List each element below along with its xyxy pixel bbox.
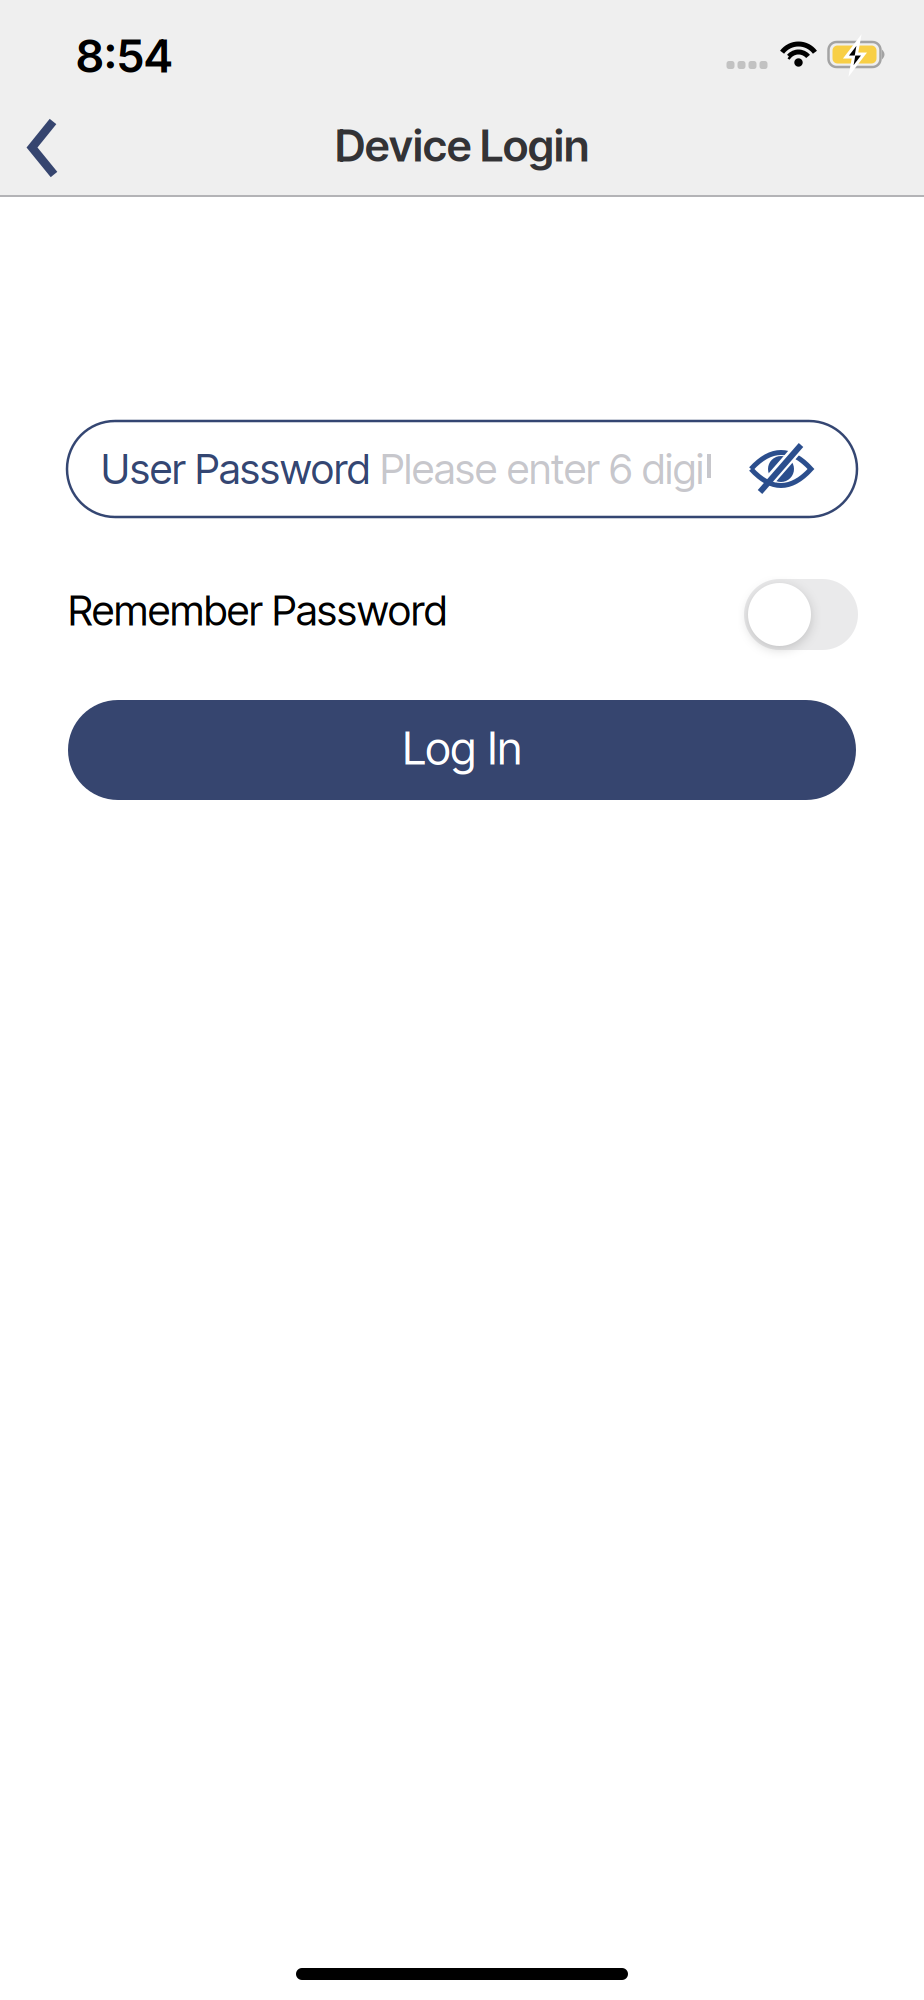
staticText: User Password <box>101 445 370 493</box>
button[interactable]: Log In <box>68 700 856 800</box>
staticText: Remember Password <box>68 586 447 635</box>
button[interactable]: Back <box>0 102 81 188</box>
staticText: Device Login <box>335 119 589 171</box>
staticText: Please enter 6 digi <box>380 445 704 493</box>
button[interactable]: Show password <box>749 439 857 499</box>
staticText: 8:54 <box>76 29 172 83</box>
staticText: Log In <box>402 721 521 775</box>
button[interactable]: Remember Password <box>744 579 858 650</box>
